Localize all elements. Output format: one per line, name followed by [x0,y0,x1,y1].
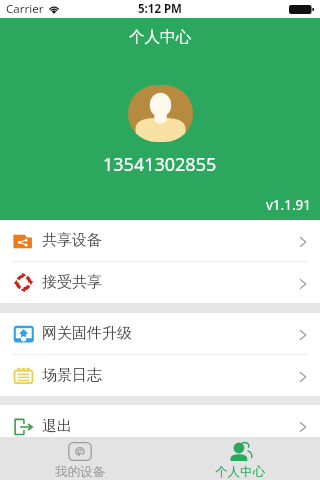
staticText: 13541302855 [103,152,217,177]
button[interactable]: 网关固件升级 [0,313,320,354]
button[interactable]: 退出 [0,405,320,447]
button[interactable]: Profile avatar [128,85,193,142]
staticText: Carrier [6,1,44,17]
button[interactable]: 接受共享 [0,262,320,303]
button[interactable]: 共享设备 [0,220,320,261]
staticText: 个人中心 [129,27,191,47]
staticText: 接受共享 [42,273,102,292]
staticText: 场景日志 [42,366,102,385]
button[interactable]: 我的设备 [0,437,160,480]
button[interactable]: 场景日志 [0,355,320,396]
staticText: 共享设备 [42,231,102,250]
staticText: 退出 [42,417,72,436]
staticText: 5:12 PM [138,1,182,17]
staticText: 网关固件升级 [42,324,132,343]
staticText: 个人中心 [215,464,265,480]
button[interactable]: 个人中心 [160,437,320,480]
staticText: 我的设备 [55,464,105,480]
staticText: v1.1.91 [266,196,311,214]
